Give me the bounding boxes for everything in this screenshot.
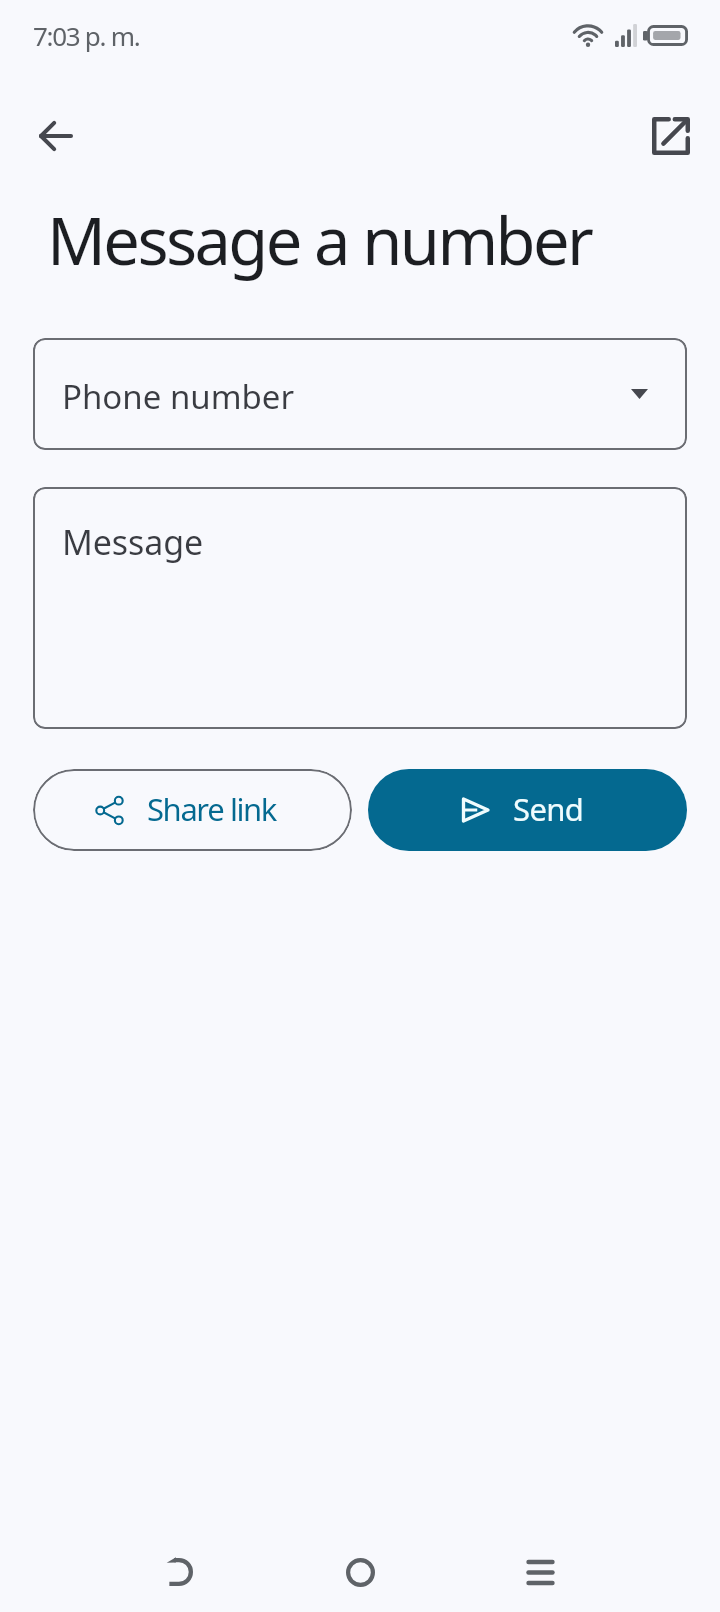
button[interactable]: Phone number: [33, 338, 687, 450]
staticText: 7:03 p. m.: [33, 18, 140, 53]
staticText: Send: [513, 788, 584, 830]
staticText: Phone number: [62, 374, 295, 419]
staticText: Message: [62, 519, 204, 565]
button[interactable]: Send: [368, 769, 687, 851]
button[interactable]: Back: [130, 1530, 230, 1612]
button[interactable]: Message: [33, 487, 687, 729]
button[interactable]: Back: [16, 96, 96, 176]
button[interactable]: Share link: [33, 769, 352, 851]
button[interactable]: Home: [310, 1530, 410, 1612]
button[interactable]: Recent apps: [490, 1530, 590, 1612]
button[interactable]: Open in new window: [631, 96, 711, 176]
staticText: Share link: [147, 788, 277, 830]
staticText: Message a number: [47, 196, 592, 285]
